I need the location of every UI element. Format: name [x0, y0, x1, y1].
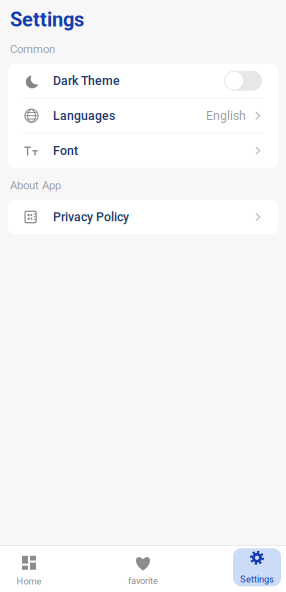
staticText: English [206, 108, 246, 123]
staticText: favorite [128, 575, 158, 586]
button[interactable]: Home [5, 546, 53, 592]
button[interactable]: Privacy Policy [8, 200, 278, 234]
button[interactable]: Dark Theme [8, 64, 278, 98]
button[interactable]: Font [8, 134, 278, 168]
staticText: Common [10, 42, 55, 56]
staticText: Home [16, 576, 41, 587]
staticText: Privacy Policy [53, 210, 129, 224]
button[interactable]: Languages [8, 99, 278, 133]
button[interactable]: Settings [233, 546, 281, 592]
staticText: Dark Theme [53, 73, 120, 88]
staticText: Settings [10, 8, 84, 31]
staticText: About App [10, 179, 61, 192]
button[interactable]: favorite [119, 546, 167, 592]
staticText: Font [53, 143, 78, 158]
staticText: Languages [53, 108, 115, 123]
staticText: Settings [240, 574, 274, 585]
